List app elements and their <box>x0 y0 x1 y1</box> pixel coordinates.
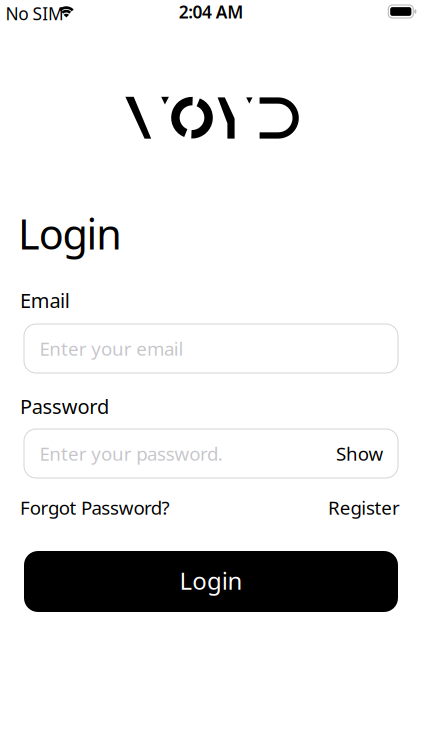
staticText: Forgot Password? <box>20 495 169 520</box>
staticText: Email <box>20 287 70 314</box>
staticText: No SIM <box>5 2 64 25</box>
staticText: Register <box>328 495 400 520</box>
staticText: 2:04 AM <box>179 0 243 23</box>
staticText: Login <box>180 565 242 596</box>
staticText: Password <box>20 393 109 420</box>
staticText: Enter your email <box>39 336 183 361</box>
staticText: Login <box>18 206 122 261</box>
staticText: Show <box>336 441 383 466</box>
staticText: Enter your password. <box>39 441 223 466</box>
